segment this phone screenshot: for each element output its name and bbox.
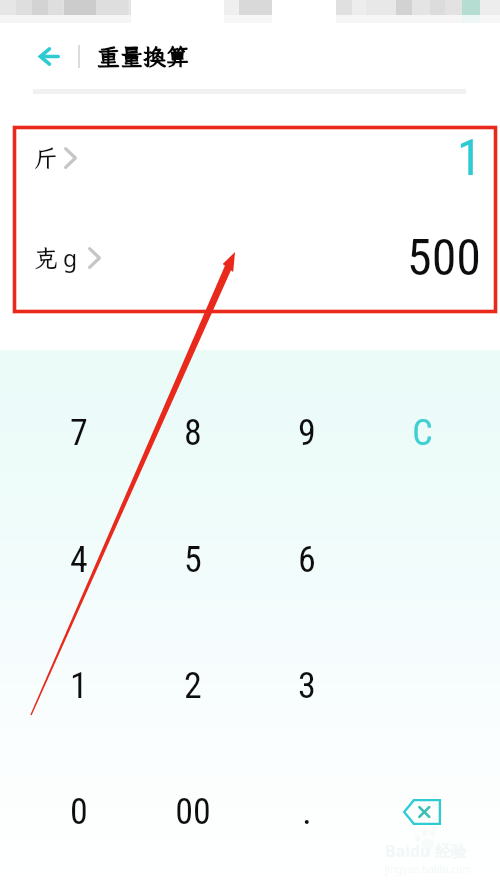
button[interactable]: Delete [365, 749, 479, 875]
staticText: 7 [70, 412, 88, 454]
staticText: Baidu 经验 [385, 840, 467, 862]
staticText: 8 [184, 412, 202, 454]
button[interactable]: C [365, 370, 479, 496]
staticText: 00 [175, 791, 211, 833]
staticText: 6 [298, 539, 316, 581]
staticText: jingyan.baidu.com [385, 862, 472, 876]
staticText: 5 [184, 539, 202, 581]
staticText: 500 [407, 229, 482, 288]
staticText: g [63, 242, 78, 273]
staticText: 1 [70, 665, 88, 707]
button[interactable]: . [250, 749, 364, 875]
button[interactable]: 5 [136, 497, 250, 623]
staticText: 1 [457, 129, 482, 188]
button[interactable]: 00 [136, 749, 250, 875]
button[interactable]: 克 [0, 219, 500, 297]
button[interactable]: 3 [250, 623, 364, 749]
staticText: 2 [184, 665, 202, 707]
staticText: 0 [70, 791, 88, 833]
button[interactable]: 8 [136, 370, 250, 496]
button[interactable]: Back [22, 33, 74, 79]
staticText: 9 [298, 412, 316, 454]
staticText: . [302, 791, 312, 833]
button[interactable]: 1 [22, 623, 136, 749]
staticText: C [412, 412, 433, 454]
staticText: 斤 [34, 142, 58, 174]
button[interactable]: 斤 [0, 120, 500, 196]
button[interactable]: 9 [250, 370, 364, 496]
button[interactable]: 7 [22, 370, 136, 496]
staticText: 3 [298, 665, 316, 707]
button[interactable]: 6 [250, 497, 364, 623]
staticText: 重量换算 [97, 41, 189, 71]
button[interactable]: 2 [136, 623, 250, 749]
staticText: 克 [34, 242, 58, 274]
staticText: 4 [70, 539, 88, 581]
button[interactable]: 4 [22, 497, 136, 623]
button[interactable]: 0 [22, 749, 136, 875]
